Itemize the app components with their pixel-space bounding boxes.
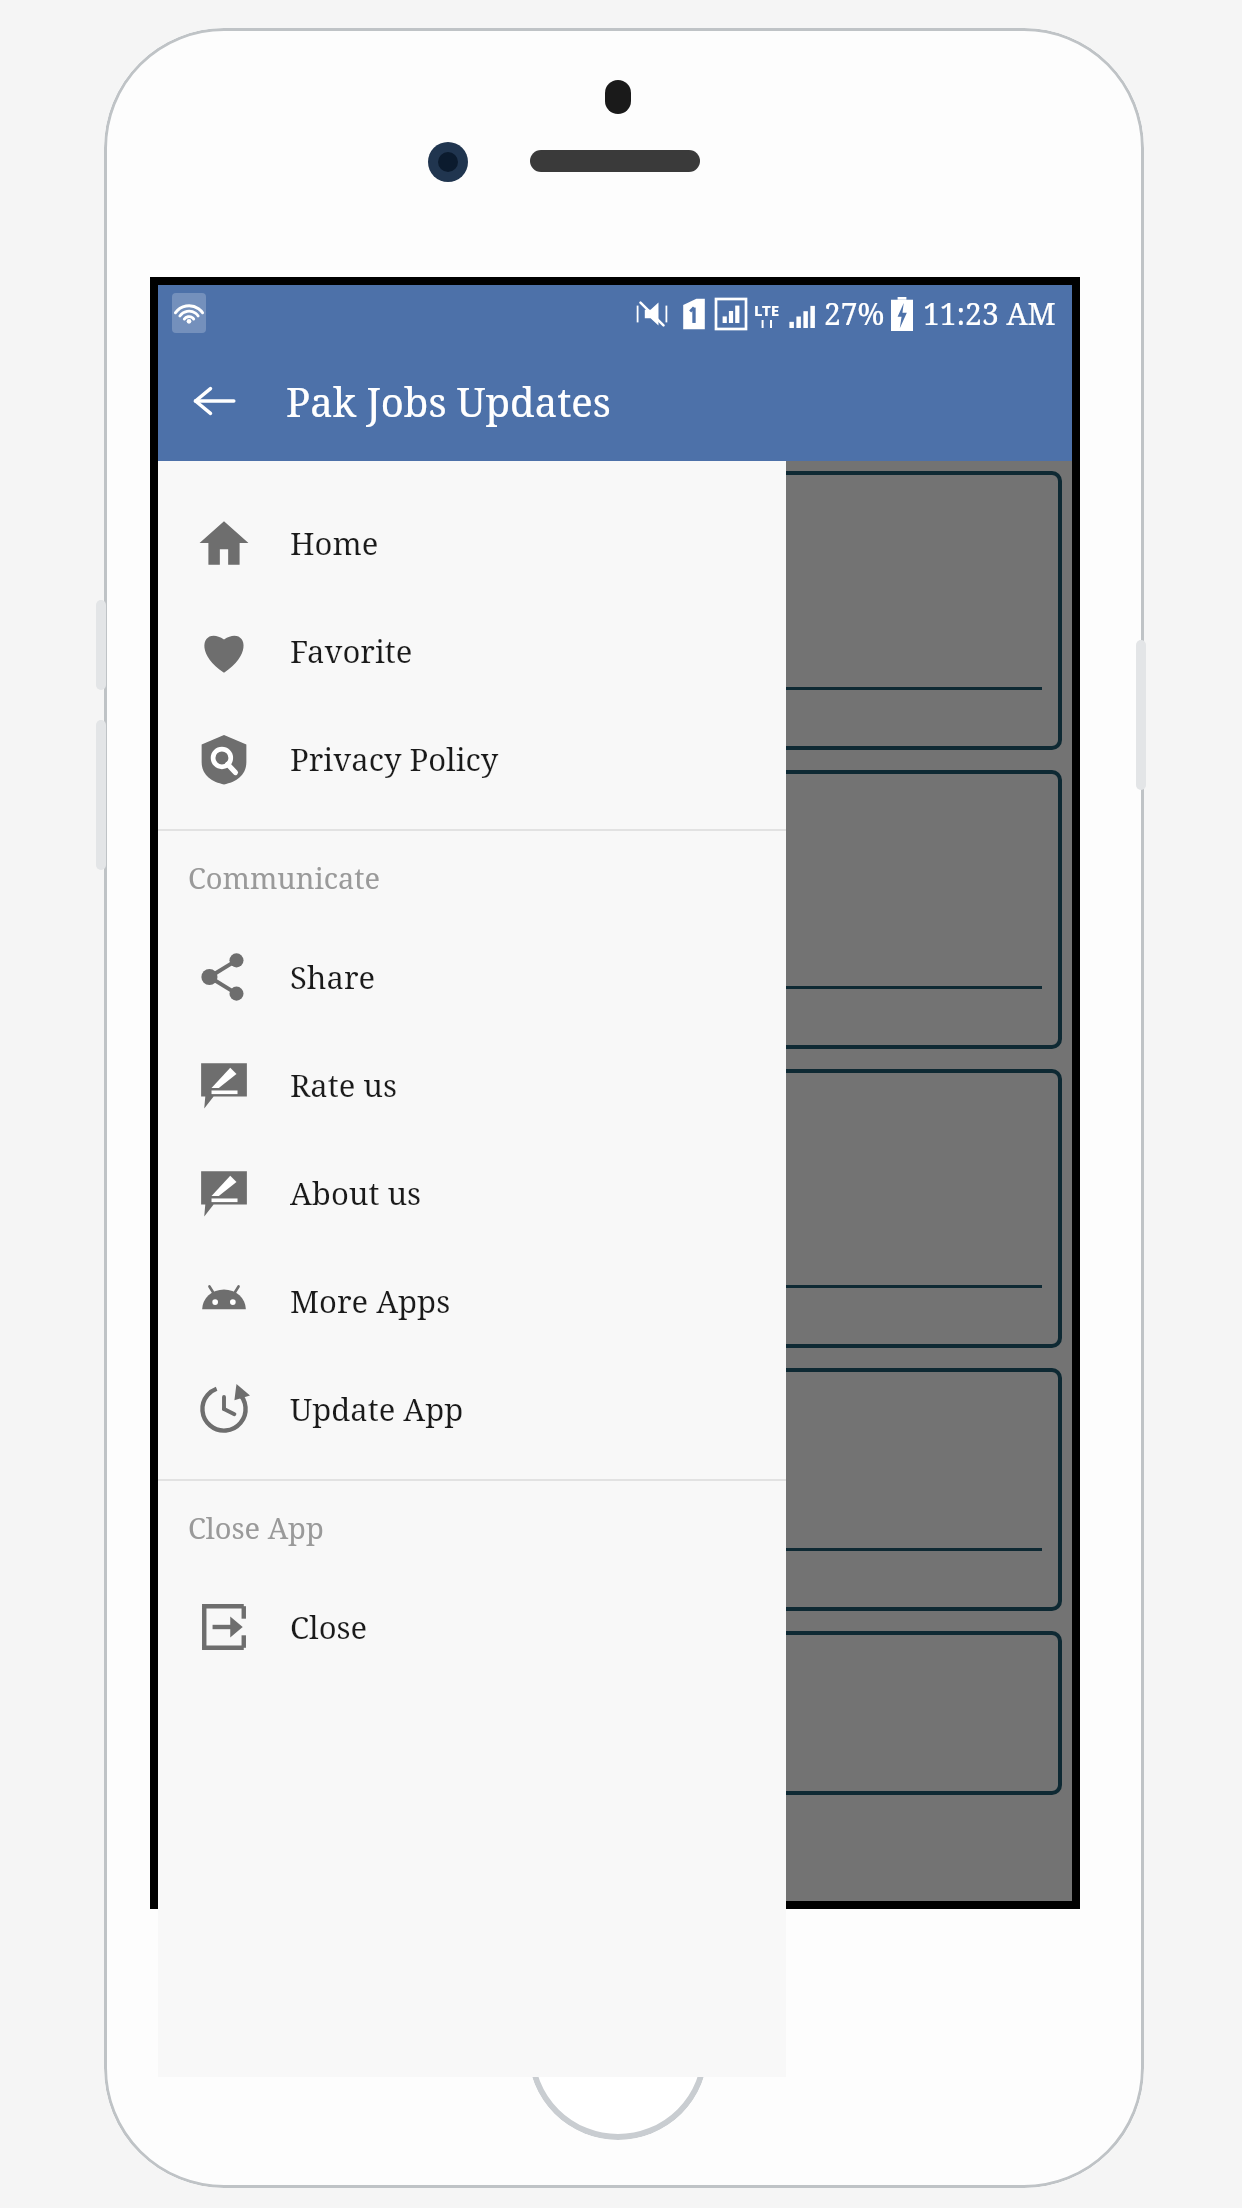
staticText: Rate us (290, 1064, 398, 1106)
staticText: 27% (824, 293, 885, 334)
button[interactable]: Close (158, 1573, 786, 1681)
staticText: About us (290, 1172, 422, 1214)
button[interactable]: Water Corporation (168, 1069, 1062, 1348)
staticText: Close (290, 1606, 368, 1648)
button[interactable]: Home (158, 489, 786, 597)
staticText: Water Corporation (188, 1089, 492, 1135)
staticText: …nder the Pak army. Now …ast date to app… (188, 1448, 509, 1520)
button[interactable]: Privacy Policy (158, 705, 786, 813)
button[interactable]: About us (158, 1139, 786, 1247)
staticText: Update App (290, 1388, 464, 1430)
staticText: Privacy Policy (290, 738, 499, 780)
button[interactable]: Back (184, 371, 244, 431)
staticText: Vacancies at gcu.edu.pk (188, 491, 571, 537)
button[interactable]: Favorite (158, 1805, 1072, 1901)
staticText: Pak Army Jobs 2020 (188, 1388, 509, 1434)
button[interactable]: Pak Army Jobs 2020 (168, 1368, 1062, 1611)
staticText: LTE (754, 300, 780, 320)
staticText: …tan by the …ncies for males and …1 Augu… (188, 1149, 452, 1257)
staticText: Home (290, 522, 379, 564)
staticText: Favorite (290, 630, 413, 672)
staticText: Close App (188, 1508, 324, 1547)
button[interactable]: Favorite (158, 597, 786, 705)
staticText: …Pakistan, Government …the Government Co… (188, 551, 509, 659)
button[interactable]: Jamia Jobs 300+ Vacancies (168, 770, 1062, 1049)
button[interactable]: More Apps (158, 1247, 786, 1355)
button[interactable]: Share (158, 923, 786, 1031)
staticText: Share (290, 956, 376, 998)
button[interactable]: Rate us (158, 1031, 786, 1139)
staticText: Pak Jobs Updates (286, 374, 611, 428)
staticText: Communicate (188, 858, 381, 897)
button[interactable]: PakJobpsUpdates (168, 1631, 1062, 1795)
staticText: 11:23 AM (923, 293, 1056, 334)
button[interactable]: Vacancies at gcu.edu.pk (168, 471, 1062, 750)
staticText: …ruction of the Jamia …ical , economic a… (188, 850, 534, 958)
staticText: More Apps (290, 1280, 451, 1322)
button[interactable]: Update App (158, 1355, 786, 1463)
staticText: Jamia Jobs 300+ Vacancies (188, 790, 611, 836)
